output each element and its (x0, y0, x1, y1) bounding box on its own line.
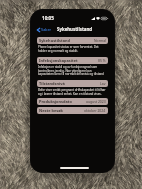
staticText: Infeksjonskapasitet (39, 58, 98, 63)
staticText: 85 % (98, 58, 106, 63)
staticText: Belte viser smått pregnant driftskapasit… (38, 88, 107, 96)
staticText: Tilstandsnivå (39, 81, 100, 86)
button[interactable]: Infeksjonskapasitet (37, 57, 108, 64)
button[interactable]: Produksjonsdato (37, 98, 108, 105)
staticText: 10:05 (42, 15, 54, 21)
staticText: Neste besøk (39, 108, 84, 113)
staticText: Phone kapasitet status er som forventet.… (38, 45, 107, 53)
staticText: Lav (100, 81, 106, 86)
staticText: Sykehustilstand (39, 38, 94, 43)
staticText: Produksjonsdato (39, 99, 86, 104)
button[interactable]: Saker (36, 27, 52, 32)
staticText: Normal (94, 38, 106, 43)
staticText: Infeksjon er stabil og av funksjonsgrad … (38, 65, 107, 76)
staticText: oktober 2024 (84, 108, 106, 113)
staticText: august 2023 (86, 99, 106, 104)
button[interactable]: Tilstandsnivå (37, 80, 108, 87)
button[interactable]: Neste besøk (37, 107, 108, 114)
staticText: Saker (41, 27, 52, 32)
staticText: Sykehustilstand (57, 26, 93, 32)
button[interactable]: Sykehustilstand (37, 37, 108, 44)
